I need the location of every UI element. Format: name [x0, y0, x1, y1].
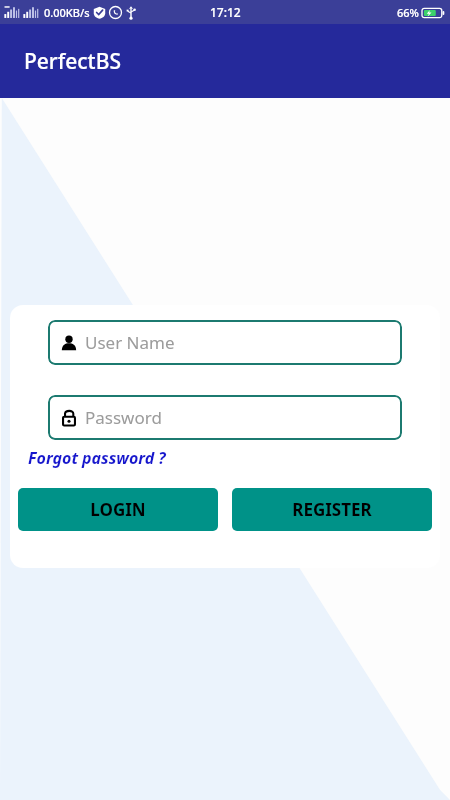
staticText: Forgot password ?	[28, 447, 166, 469]
staticText: 66%	[397, 5, 419, 20]
button[interactable]: Forgot password ?	[28, 445, 166, 471]
staticText: 0.00KB/s	[44, 5, 90, 20]
other: Password	[60, 409, 78, 427]
staticText: LOGIN	[90, 498, 146, 521]
staticText: REGISTER	[292, 498, 372, 521]
staticText: PerfectBS	[24, 47, 121, 76]
other: User name	[60, 334, 78, 352]
staticText: 17:12	[210, 4, 241, 20]
button[interactable]: REGISTER	[232, 488, 432, 531]
button[interactable]: User name	[48, 320, 402, 365]
staticText: Password	[85, 406, 162, 429]
staticText: User Name	[85, 331, 175, 354]
button[interactable]: LOGIN	[18, 488, 218, 531]
button[interactable]: Password	[48, 395, 402, 440]
